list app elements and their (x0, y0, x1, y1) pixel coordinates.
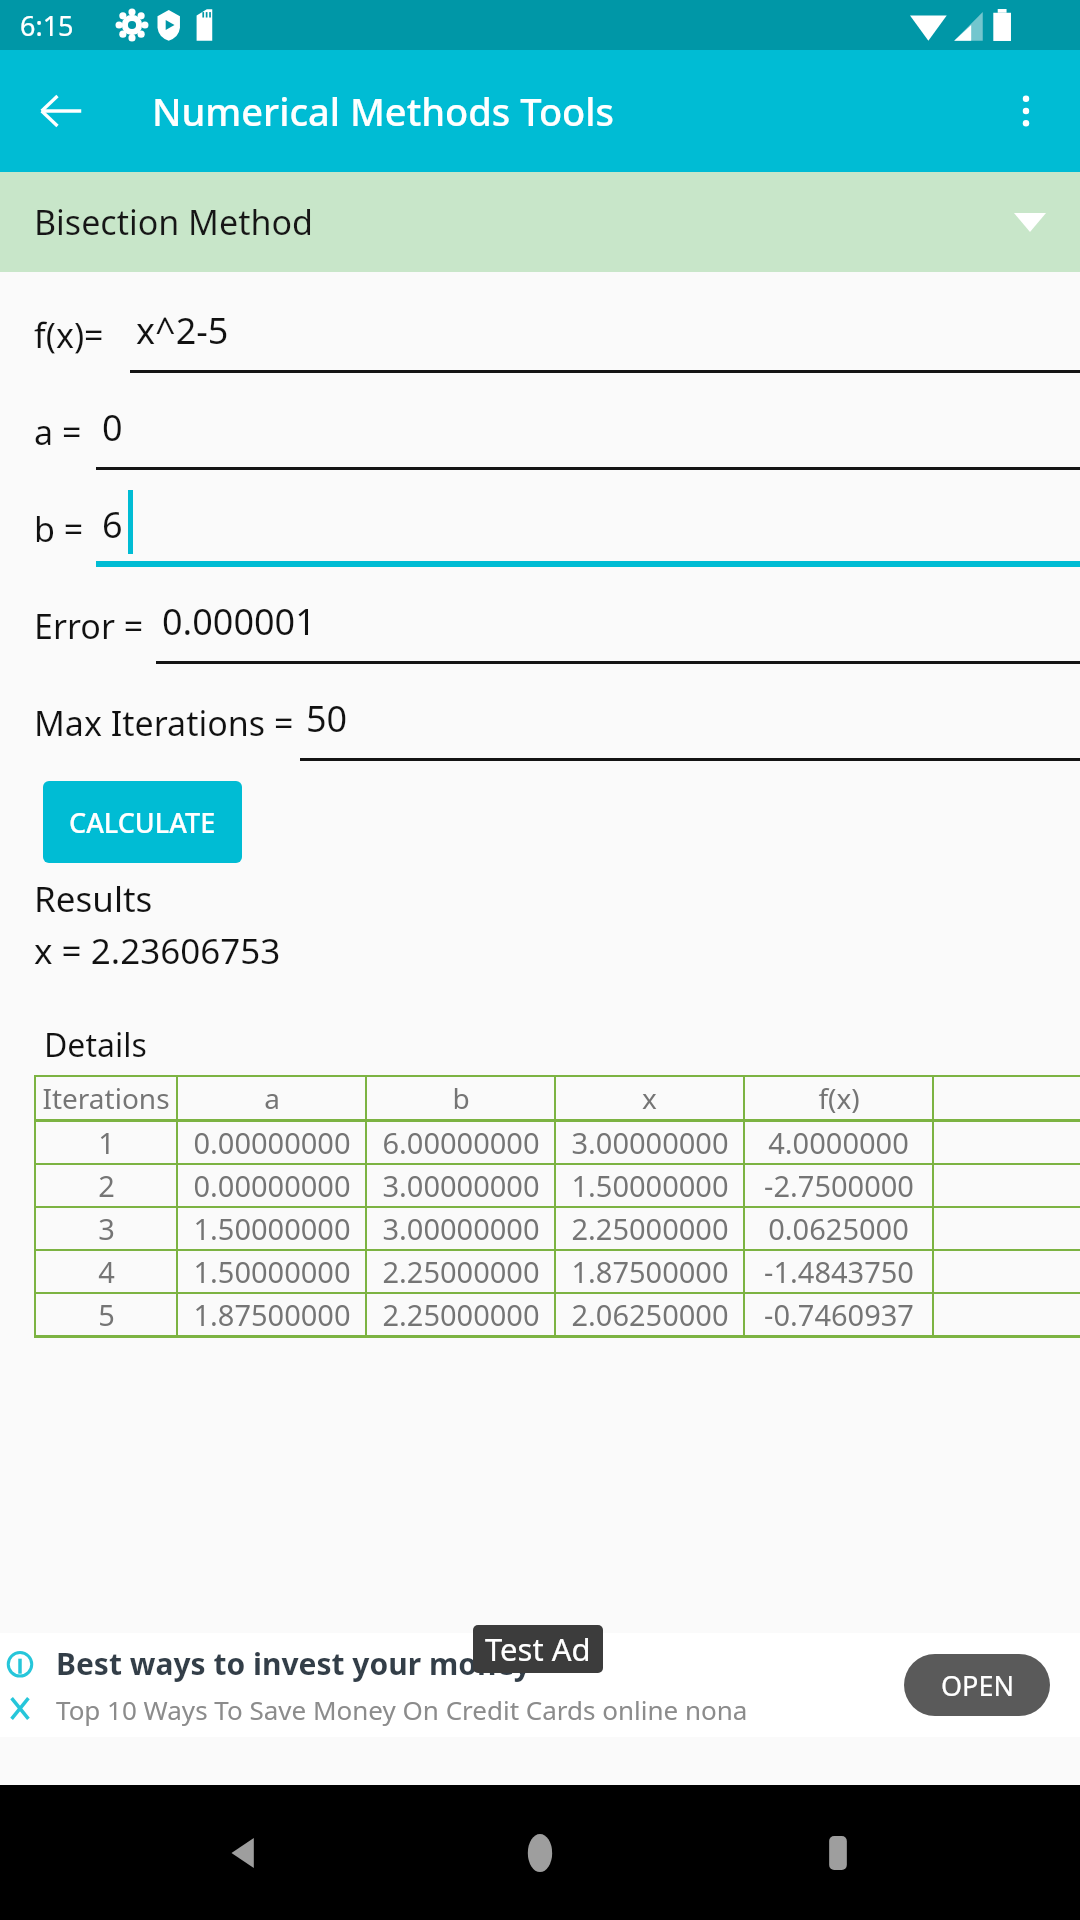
staticText: 2.25000000 (382, 1252, 540, 1291)
staticText: 2.06250000 (571, 1295, 729, 1334)
staticText: x^2-5 (136, 306, 229, 355)
staticText: 6 (102, 500, 123, 549)
staticText: b (452, 1079, 470, 1117)
staticText: 4.0000000 (768, 1123, 909, 1162)
button[interactable]: Recent apps (783, 1798, 893, 1908)
staticText: a (264, 1079, 280, 1117)
staticText: 0.00000000 (193, 1166, 351, 1205)
staticText: a = (34, 409, 82, 455)
staticText: -1.4843750 (764, 1252, 914, 1291)
staticText: CALCULATE (69, 804, 216, 841)
staticText: f(x) (818, 1079, 860, 1117)
button[interactable]: Max Iterations = (0, 680, 1080, 777)
staticText: Details (44, 1023, 147, 1067)
button[interactable]: More options (994, 79, 1058, 143)
staticText: 0.000001 (162, 597, 316, 646)
button[interactable]: Home (485, 1798, 595, 1908)
staticText: Results (34, 875, 153, 923)
staticText: Iterations (42, 1079, 170, 1117)
staticText: 1 (98, 1123, 115, 1162)
button[interactable]: Bisection Method (0, 172, 1080, 272)
staticText: 0 (102, 403, 123, 452)
staticText: Test Ad (485, 1628, 591, 1670)
button[interactable]: a = (0, 389, 1080, 486)
other: Ad info (6, 1638, 34, 1732)
staticText: Max Iterations = (34, 700, 294, 746)
staticText: b = (34, 506, 84, 552)
staticText: 50 (306, 694, 348, 743)
staticText: 0.00000000 (193, 1123, 351, 1162)
staticText: 1.87500000 (193, 1295, 351, 1334)
staticText: Numerical Methods Tools (152, 85, 615, 137)
button[interactable]: Back (26, 76, 96, 146)
staticText: 2.25000000 (571, 1209, 729, 1248)
button[interactable]: f(x)= (0, 292, 1080, 389)
staticText: 0.0625000 (768, 1209, 909, 1248)
staticText: 2.25000000 (382, 1295, 540, 1334)
staticText: 1.50000000 (193, 1252, 351, 1291)
staticText: 3.00000000 (571, 1123, 729, 1162)
button[interactable]: Error = (0, 583, 1080, 680)
button[interactable]: OPEN (904, 1654, 1050, 1716)
staticText: f(x)= (34, 312, 104, 358)
staticText: -0.7460937 (764, 1295, 914, 1334)
staticText: 3.00000000 (382, 1166, 540, 1205)
staticText: 4 (98, 1252, 115, 1291)
staticText: Bisection Method (34, 199, 313, 245)
staticText: -2.7500000 (764, 1166, 914, 1205)
staticText: 6:15 (20, 7, 74, 44)
staticText: 5 (98, 1295, 115, 1334)
button[interactable]: CALCULATE (43, 781, 242, 863)
staticText: x = 2.23606753 (34, 927, 281, 975)
staticText: 6.00000000 (382, 1123, 540, 1162)
staticText: 1.87500000 (571, 1252, 729, 1291)
staticText: Best ways to invest your money (56, 1643, 531, 1684)
staticText: Error = (34, 603, 144, 649)
staticText: Top 10 Ways To Save Money On Credit Card… (56, 1692, 748, 1727)
staticText: 1.50000000 (193, 1209, 351, 1248)
staticText: 3 (98, 1209, 115, 1248)
staticText: OPEN (941, 1667, 1014, 1704)
button[interactable]: Back (188, 1798, 298, 1908)
staticText: x (642, 1079, 657, 1117)
button[interactable]: Ad info (0, 1633, 1080, 1737)
staticText: 2 (98, 1166, 115, 1205)
button[interactable]: b = (0, 486, 1080, 583)
staticText: 1.50000000 (571, 1166, 729, 1205)
staticText: 3.00000000 (382, 1209, 540, 1248)
